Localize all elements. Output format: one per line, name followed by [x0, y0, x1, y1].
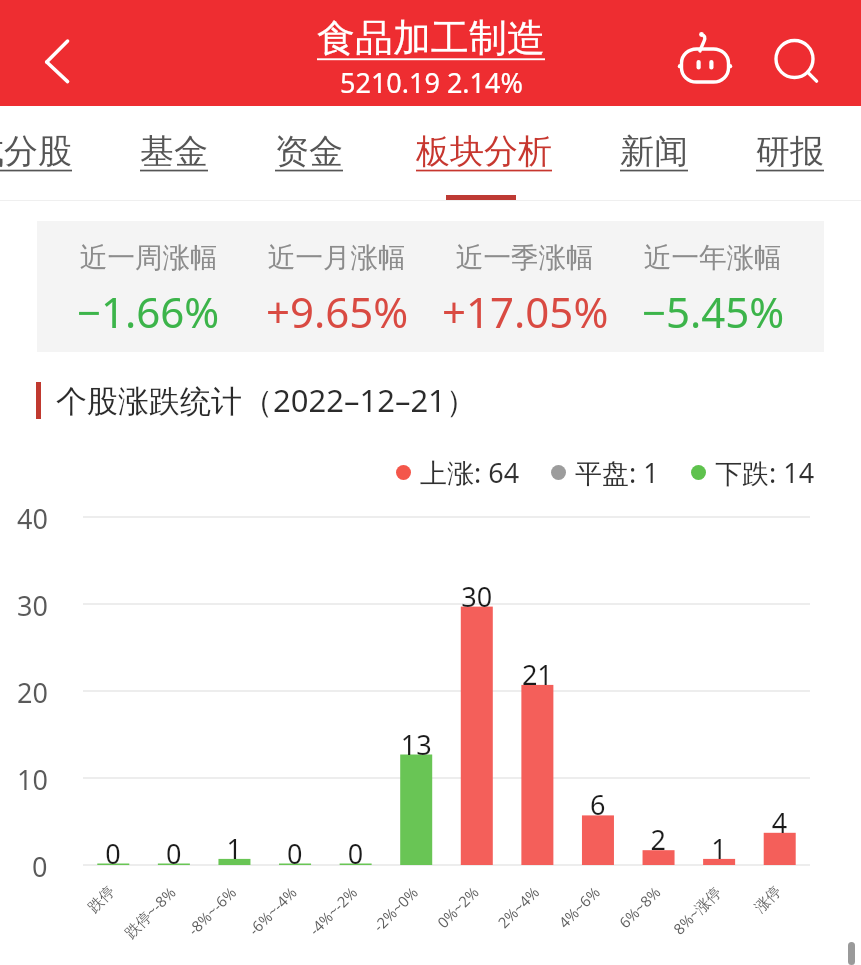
- staticText: +9.65%: [266, 283, 409, 340]
- button[interactable]: 板块分析: [416, 130, 552, 173]
- staticText: 板块分析: [416, 130, 552, 173]
- staticText: 平盘: 1: [575, 454, 659, 491]
- staticText: −5.45%: [642, 283, 785, 340]
- staticText: 近一季涨幅: [456, 241, 594, 276]
- button[interactable]: 基金: [140, 130, 208, 173]
- staticText: 研报: [756, 130, 824, 173]
- staticText: 个股涨跌统计（2022–12–21）: [56, 379, 477, 421]
- button[interactable]: 研报: [756, 130, 824, 173]
- staticText: 上涨: 64: [420, 454, 520, 491]
- staticText: 基金: [140, 130, 208, 173]
- button[interactable]: AI assistant: [677, 30, 733, 88]
- staticText: 食品加工制造: [317, 14, 545, 62]
- staticText: +17.05%: [442, 283, 609, 340]
- button[interactable]: 新闻: [620, 130, 688, 173]
- staticText: 5210.19 2.14%: [340, 64, 523, 101]
- staticText: −1.66%: [77, 283, 220, 340]
- staticText: 近一周涨幅: [80, 241, 218, 276]
- button[interactable]: 成分股: [0, 130, 72, 173]
- staticText: 新闻: [620, 130, 688, 173]
- staticText: 近一年涨幅: [644, 241, 782, 276]
- button[interactable]: Search: [767, 30, 823, 88]
- staticText: 近一月涨幅: [268, 241, 406, 276]
- staticText: 下跌: 14: [715, 454, 815, 491]
- staticText: 成分股: [0, 130, 72, 173]
- staticText: 资金: [275, 130, 343, 173]
- button[interactable]: Back: [26, 20, 88, 86]
- button[interactable]: 资金: [275, 130, 343, 173]
